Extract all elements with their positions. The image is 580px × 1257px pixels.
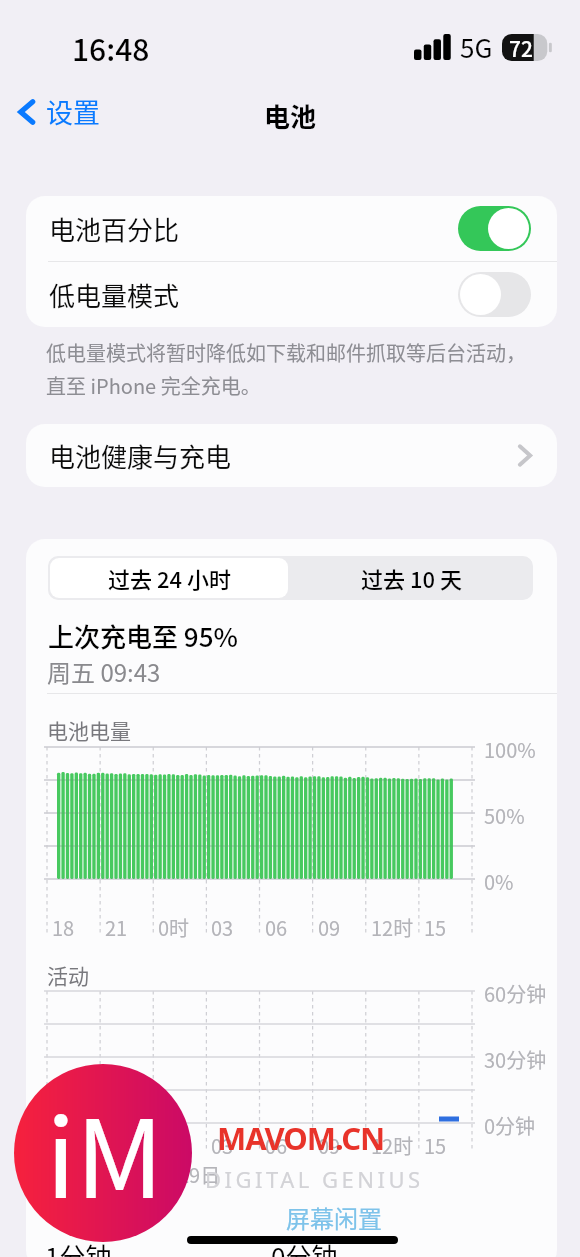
staticText: 100% bbox=[484, 735, 536, 764]
staticText: 09 bbox=[318, 1131, 341, 1160]
staticText: 电池百分比 bbox=[49, 210, 180, 248]
other: Back bbox=[14, 95, 40, 129]
staticText: 29日 bbox=[178, 1160, 221, 1189]
staticText: 03 bbox=[211, 913, 234, 942]
staticText: 上次充电至 95% bbox=[48, 617, 238, 655]
staticText: 72 bbox=[509, 33, 533, 60]
button[interactable]: Back bbox=[14, 92, 100, 131]
staticText: 16:48 bbox=[72, 26, 150, 69]
button[interactable]: 电池健康与充电 bbox=[26, 424, 557, 487]
staticText: 18 bbox=[52, 1131, 75, 1160]
staticText: 电池电量 bbox=[47, 715, 131, 745]
staticText: 06 bbox=[265, 1131, 288, 1160]
button[interactable]: 电池百分比 bbox=[26, 196, 557, 261]
button[interactable]: 过去 24 小时 bbox=[50, 558, 288, 598]
staticText: 12时 bbox=[371, 1131, 414, 1160]
staticText: 03 bbox=[211, 1131, 234, 1160]
staticText: 低电量模式 bbox=[49, 276, 180, 314]
staticText: 周五 09:43 bbox=[47, 654, 161, 689]
button[interactable]: Off bbox=[458, 272, 531, 317]
staticText: 过去 10 天 bbox=[361, 562, 462, 594]
staticText: 1分钟 bbox=[45, 1237, 112, 1257]
staticText: 60分钟 bbox=[484, 979, 547, 1008]
staticText: 12时 bbox=[371, 913, 414, 942]
staticText: 0分钟 bbox=[484, 1111, 536, 1140]
staticText: 0时 bbox=[158, 913, 190, 942]
staticText: 过去 24 小时 bbox=[108, 562, 231, 594]
staticText: 0% bbox=[484, 867, 514, 896]
staticText: 0分钟 bbox=[271, 1237, 338, 1257]
staticText: iM bbox=[46, 1073, 164, 1229]
staticText: 电池健康与充电 bbox=[49, 437, 232, 475]
staticText: 直至 iPhone 完全充电。 bbox=[46, 371, 261, 400]
staticText: 电池 bbox=[264, 97, 317, 135]
staticText: 5G bbox=[460, 28, 493, 66]
staticText: 屏幕闲置 bbox=[286, 1200, 382, 1235]
staticText: DIGITAL GENIUS bbox=[205, 1164, 424, 1194]
staticText: 09 bbox=[318, 913, 341, 942]
button[interactable]: 过去 10 天 bbox=[290, 556, 533, 600]
staticText: 活动 bbox=[47, 960, 89, 990]
staticText: 21 bbox=[105, 913, 128, 942]
staticText: 0时 bbox=[158, 1131, 190, 1160]
staticText: 18 bbox=[52, 913, 75, 942]
staticText: 50% bbox=[484, 801, 525, 830]
button[interactable]: 低电量模式 bbox=[26, 262, 557, 327]
staticText: 30分钟 bbox=[484, 1045, 547, 1074]
staticText: 15 bbox=[424, 1131, 447, 1160]
staticText: 设置 bbox=[46, 92, 100, 131]
button[interactable]: On bbox=[458, 206, 531, 251]
staticText: 21 bbox=[105, 1131, 128, 1160]
staticText: MAVOM.CN bbox=[217, 1117, 385, 1159]
staticText: 06 bbox=[265, 913, 288, 942]
staticText: 低电量模式将暂时降低如下载和邮件抓取等后台活动， bbox=[46, 338, 526, 367]
staticText: 15 bbox=[424, 913, 447, 942]
